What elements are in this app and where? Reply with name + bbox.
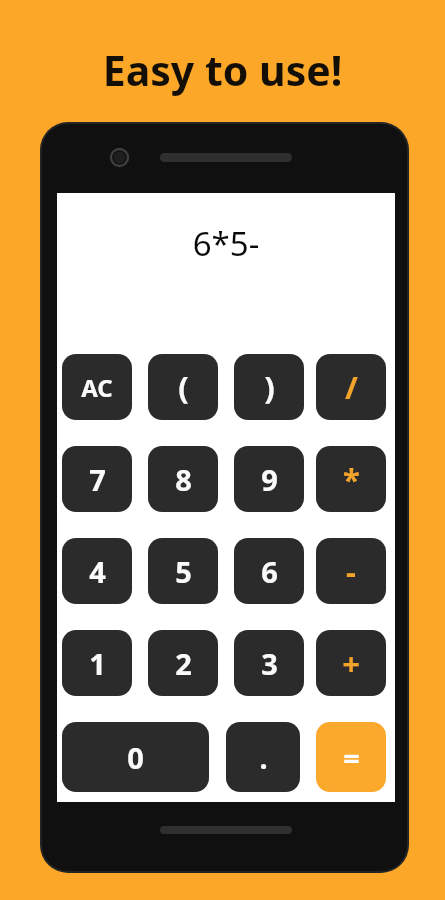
button[interactable]: 7 [62,446,132,512]
staticText: + [342,642,360,684]
staticText: 4 [89,552,106,591]
button[interactable]: 6 [234,538,304,604]
button[interactable]: Close parenthesis [234,354,304,420]
button[interactable]: 4 [62,538,132,604]
button[interactable]: Divide [316,354,386,420]
staticText: ( [178,366,189,408]
staticText: . [259,738,268,777]
button[interactable]: All clear [62,354,132,420]
staticText: 7 [89,460,106,499]
staticText: 6 [261,552,278,591]
button[interactable]: Open parenthesis [148,354,218,420]
staticText: = [343,738,360,777]
button[interactable]: Decimal point [226,722,300,792]
staticText: 1 [89,644,106,683]
button[interactable]: 8 [148,446,218,512]
button[interactable]: Plus [316,630,386,696]
staticText: 0 [127,738,144,777]
button[interactable]: Minus [316,538,386,604]
staticText: 9 [261,460,278,499]
staticText: 6*5-(1/3)+5-9*4+3+2+1 [57,221,395,266]
button[interactable]: 3 [234,630,304,696]
button[interactable]: Multiply [316,446,386,512]
button[interactable]: Equals [316,722,386,792]
button[interactable]: 1 [62,630,132,696]
staticText: Easy to use! [0,42,445,98]
staticText: 5 [175,552,192,591]
button[interactable]: 5 [148,538,218,604]
button[interactable]: 9 [234,446,304,512]
button[interactable]: 2 [148,630,218,696]
button[interactable]: 0 [62,722,209,792]
staticText: AC [81,371,113,404]
staticText: ) [264,366,275,408]
staticText: - [346,550,356,592]
staticText: * [343,458,360,500]
staticText: 2 [175,644,192,683]
staticText: / [345,366,358,408]
staticText: 3 [261,644,278,683]
staticText: 8 [175,460,192,499]
